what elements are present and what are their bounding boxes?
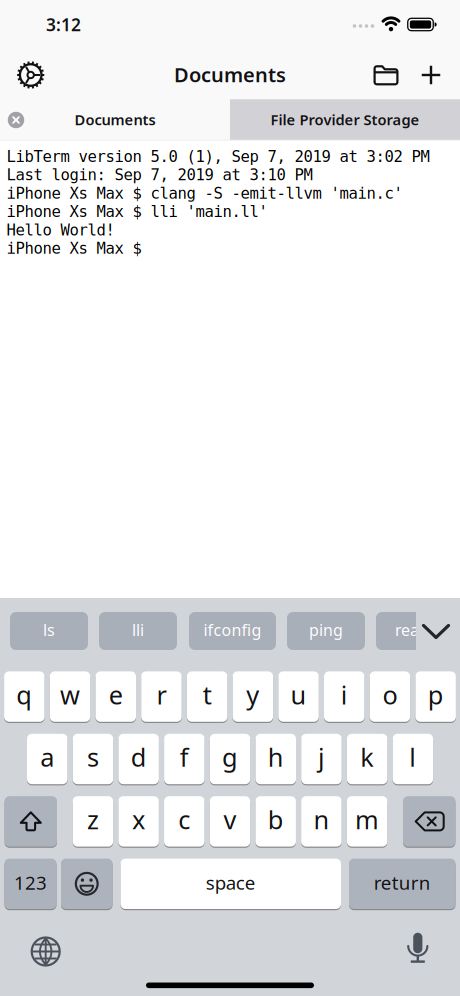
staticText: a	[40, 740, 54, 774]
staticText: q	[16, 678, 32, 711]
button[interactable]: v	[210, 796, 250, 847]
button[interactable]: ls	[10, 612, 88, 650]
staticText: File Provider Storage	[270, 110, 419, 129]
staticText: iPhone Xs Max $ lli 'main.ll'	[6, 203, 267, 221]
button[interactable]: w	[50, 671, 90, 722]
staticText: t	[203, 678, 212, 711]
button[interactable]: g	[210, 734, 250, 784]
staticText: LibTerm version 5.0 (1), Sep 7, 2019 at …	[6, 147, 429, 166]
staticText: space	[206, 870, 256, 895]
button[interactable]: Browse files	[373, 65, 398, 85]
staticText: Hello World!	[6, 221, 114, 239]
button[interactable]: Documents	[0, 99, 230, 140]
staticText: Documents	[74, 110, 155, 129]
button[interactable]: k	[347, 734, 387, 784]
staticText: b	[268, 803, 284, 836]
staticText: f	[180, 740, 189, 774]
staticText: iPhone Xs Max $ clang -S -emit-llvm 'mai…	[6, 184, 402, 202]
staticText: Documents	[174, 61, 286, 88]
button[interactable]: u	[278, 671, 319, 722]
button[interactable]: Delete	[403, 796, 455, 847]
button[interactable]: j	[301, 734, 342, 784]
staticText: read	[395, 619, 429, 640]
button[interactable]: Dictate	[403, 933, 433, 967]
staticText: u	[291, 678, 307, 711]
staticText: r	[156, 678, 166, 711]
staticText: iPhone Xs Max $	[6, 239, 150, 257]
staticText: l	[409, 740, 416, 774]
button[interactable]: b	[255, 796, 296, 847]
staticText: ping	[309, 619, 343, 640]
staticText: i	[341, 678, 348, 711]
button[interactable]: e	[95, 671, 136, 722]
button[interactable]: o	[370, 671, 410, 722]
button[interactable]: Next keyboard	[32, 937, 60, 965]
staticText: w	[60, 678, 80, 711]
button[interactable]: New terminal	[422, 66, 440, 84]
button[interactable]: f	[164, 734, 205, 784]
staticText: lli	[132, 619, 144, 640]
staticText: s	[87, 740, 99, 774]
staticText: m	[355, 803, 379, 836]
button[interactable]: return	[349, 859, 455, 909]
button[interactable]: Close tab	[8, 112, 24, 128]
staticText: e	[109, 678, 123, 711]
staticText: j	[318, 740, 325, 774]
button[interactable]: l	[393, 734, 433, 784]
button[interactable]: ping	[287, 612, 365, 650]
button[interactable]: a	[27, 734, 67, 784]
staticText: 3:12	[46, 13, 81, 36]
button[interactable]: space	[120, 859, 341, 909]
staticText: z	[87, 803, 99, 836]
staticText: o	[382, 678, 397, 711]
button[interactable]: p	[415, 671, 456, 722]
button[interactable]: n	[301, 796, 342, 847]
button[interactable]: y	[233, 671, 273, 722]
staticText: h	[268, 740, 284, 774]
staticText: y	[246, 678, 259, 711]
button[interactable]: x	[118, 796, 159, 847]
button[interactable]: 123	[4, 859, 56, 909]
button[interactable]: Settings	[16, 60, 46, 90]
staticText: p	[428, 678, 444, 711]
staticText: ifconfig	[203, 619, 261, 640]
button[interactable]: Shift	[5, 796, 57, 847]
staticText: n	[313, 803, 329, 836]
staticText: x	[132, 803, 145, 836]
button[interactable]: d	[118, 734, 159, 784]
button[interactable]: t	[187, 671, 227, 722]
button[interactable]: read	[376, 612, 448, 650]
button[interactable]: ifconfig	[189, 612, 276, 650]
button[interactable]: r	[141, 671, 182, 722]
button[interactable]: File Provider Storage	[230, 99, 460, 140]
staticText: 123	[14, 870, 47, 895]
staticText: k	[360, 740, 374, 774]
button[interactable]: z	[73, 796, 113, 847]
button[interactable]: m	[347, 796, 387, 847]
staticText: g	[222, 740, 238, 774]
staticText: ls	[43, 619, 55, 640]
staticText: v	[223, 803, 236, 836]
staticText: return	[374, 870, 431, 895]
button[interactable]: Emoji	[61, 859, 112, 909]
staticText: d	[131, 740, 147, 774]
button[interactable]: Hide suggestions	[423, 625, 448, 637]
button[interactable]: s	[73, 734, 113, 784]
button[interactable]: c	[164, 796, 205, 847]
button[interactable]: lli	[99, 612, 177, 650]
button[interactable]: i	[324, 671, 364, 722]
staticText: Last login: Sep 7, 2019 at 3:10 PM	[6, 166, 312, 184]
button[interactable]: h	[255, 734, 296, 784]
staticText: c	[178, 803, 190, 836]
button[interactable]: q	[4, 671, 45, 722]
